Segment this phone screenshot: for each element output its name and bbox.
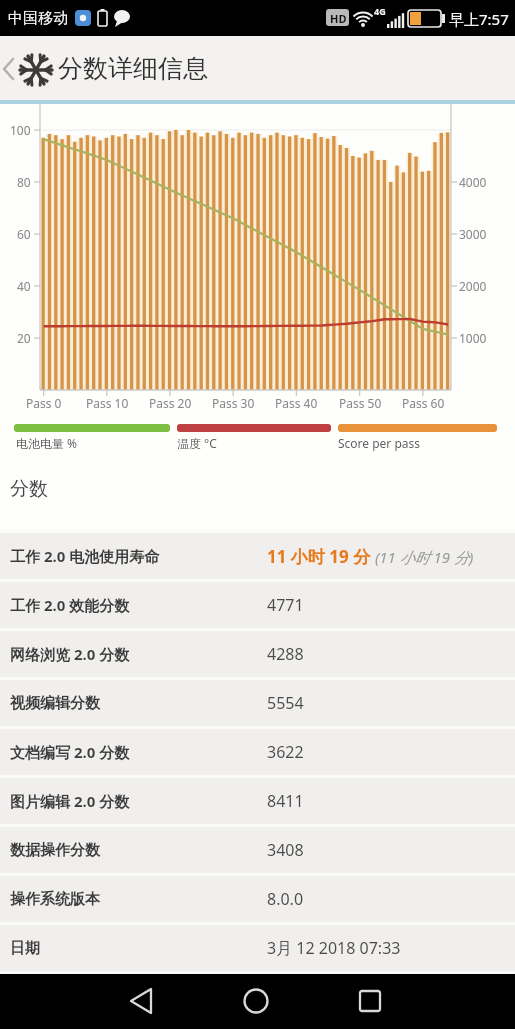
button[interactable] (340, 976, 400, 1026)
button[interactable] (111, 976, 171, 1026)
staticText: HD (330, 11, 347, 26)
staticText: 日期 (10, 939, 40, 958)
staticText: 20 (17, 330, 31, 346)
staticText: Pass 60 (402, 395, 445, 411)
staticText: 操作系统版本 (10, 890, 100, 909)
staticText: 3408 (267, 839, 304, 861)
staticText: 80 (17, 174, 31, 190)
staticText: 工作 2.0 电池使用寿命 (10, 546, 160, 566)
staticText: 文档编写 2.0 分数 (10, 742, 130, 762)
staticText: 40 (17, 278, 31, 294)
staticText: 1000 (459, 330, 487, 346)
staticText: Pass 20 (149, 395, 192, 411)
staticText: Score per pass (338, 435, 421, 451)
staticText: 中国移动 (8, 9, 68, 28)
staticText: 3622 (267, 741, 304, 763)
staticText: 温度 °C (177, 435, 217, 451)
button[interactable]: 网络浏览 2.0 分数 (0, 631, 515, 677)
staticText: 早上7:57 (449, 9, 509, 29)
button[interactable]: 操作系统版本 (0, 876, 515, 922)
staticText: Pass 10 (86, 395, 129, 411)
staticText: 工作 2.0 效能分数 (10, 595, 130, 615)
staticText: 8411 (267, 790, 304, 812)
staticText: Pass 40 (275, 395, 318, 411)
staticText: Pass 0 (26, 395, 62, 411)
staticText: 图片编辑 2.0 分数 (10, 791, 130, 811)
staticText: 数据操作分数 (10, 841, 100, 860)
button[interactable]: 日期 (0, 925, 515, 971)
staticText: (11 小时 19 分) (371, 547, 474, 567)
staticText: 60 (17, 226, 31, 242)
staticText: 3月 12 2018 07:33 (267, 937, 401, 959)
staticText: 100 (10, 122, 31, 138)
staticText: Pass 50 (339, 395, 382, 411)
button[interactable]: 视频编辑分数 (0, 680, 515, 726)
button[interactable]: 工作 2.0 效能分数 (0, 582, 515, 628)
button[interactable]: 文档编写 2.0 分数 (0, 729, 515, 775)
staticText: 电池电量 % (16, 435, 78, 451)
staticText: 4000 (459, 174, 487, 190)
staticText: 视频编辑分数 (10, 694, 100, 713)
staticText: 2000 (459, 278, 487, 294)
button[interactable]: 图片编辑 2.0 分数 (0, 778, 515, 824)
staticText: 4771 (267, 594, 304, 616)
staticText: 8.0.0 (267, 888, 304, 910)
staticText: 3000 (459, 226, 487, 242)
staticText: 4G (374, 5, 386, 17)
button[interactable] (226, 976, 286, 1026)
staticText: 分数详细信息 (58, 53, 208, 84)
staticText: 11 小时 19 分 (267, 545, 371, 568)
button[interactable]: 数据操作分数 (0, 827, 515, 873)
button[interactable]: 工作 2.0 电池使用寿命 (0, 533, 515, 579)
staticText: 网络浏览 2.0 分数 (10, 644, 130, 664)
staticText: Pass 30 (212, 395, 255, 411)
button[interactable] (0, 36, 26, 100)
staticText: 4288 (267, 643, 304, 665)
staticText: 分数 (10, 477, 48, 501)
staticText: 5554 (267, 692, 304, 714)
